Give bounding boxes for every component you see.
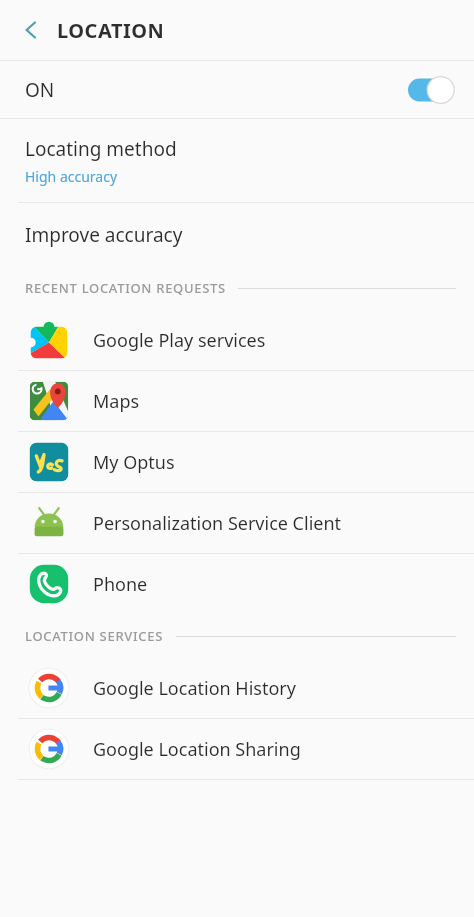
button[interactable]: Locating method (0, 119, 474, 202)
staticText: Locating method (25, 136, 177, 162)
button[interactable]: Personalization Service Client (0, 493, 474, 553)
staticText: LOCATION SERVICES (25, 627, 164, 645)
staticText: Google Location History (93, 676, 296, 701)
button[interactable]: Location toggle, on (408, 75, 454, 105)
button[interactable]: Google Location Sharing (0, 719, 474, 779)
button[interactable]: Google Play services (0, 310, 474, 370)
button[interactable]: My Optus (0, 432, 474, 492)
staticText: My Optus (93, 450, 175, 475)
staticText: Personalization Service Client (93, 511, 342, 536)
staticText: Google Location Sharing (93, 737, 301, 762)
staticText: High accuracy (25, 167, 118, 186)
staticText: LOCATION (57, 17, 165, 44)
button[interactable]: Back (10, 9, 52, 51)
staticText: Phone (93, 572, 148, 597)
button[interactable]: ON (0, 61, 474, 118)
staticText: Google Play services (93, 328, 266, 353)
staticText: RECENT LOCATION REQUESTS (25, 279, 226, 297)
staticText: ON (25, 77, 55, 103)
button[interactable]: Improve accuracy (0, 203, 474, 266)
button[interactable]: Maps (0, 371, 474, 431)
staticText: Improve accuracy (25, 222, 183, 248)
staticText: Maps (93, 389, 140, 414)
button[interactable]: Google Location History (0, 658, 474, 718)
button[interactable]: Phone (0, 554, 474, 614)
